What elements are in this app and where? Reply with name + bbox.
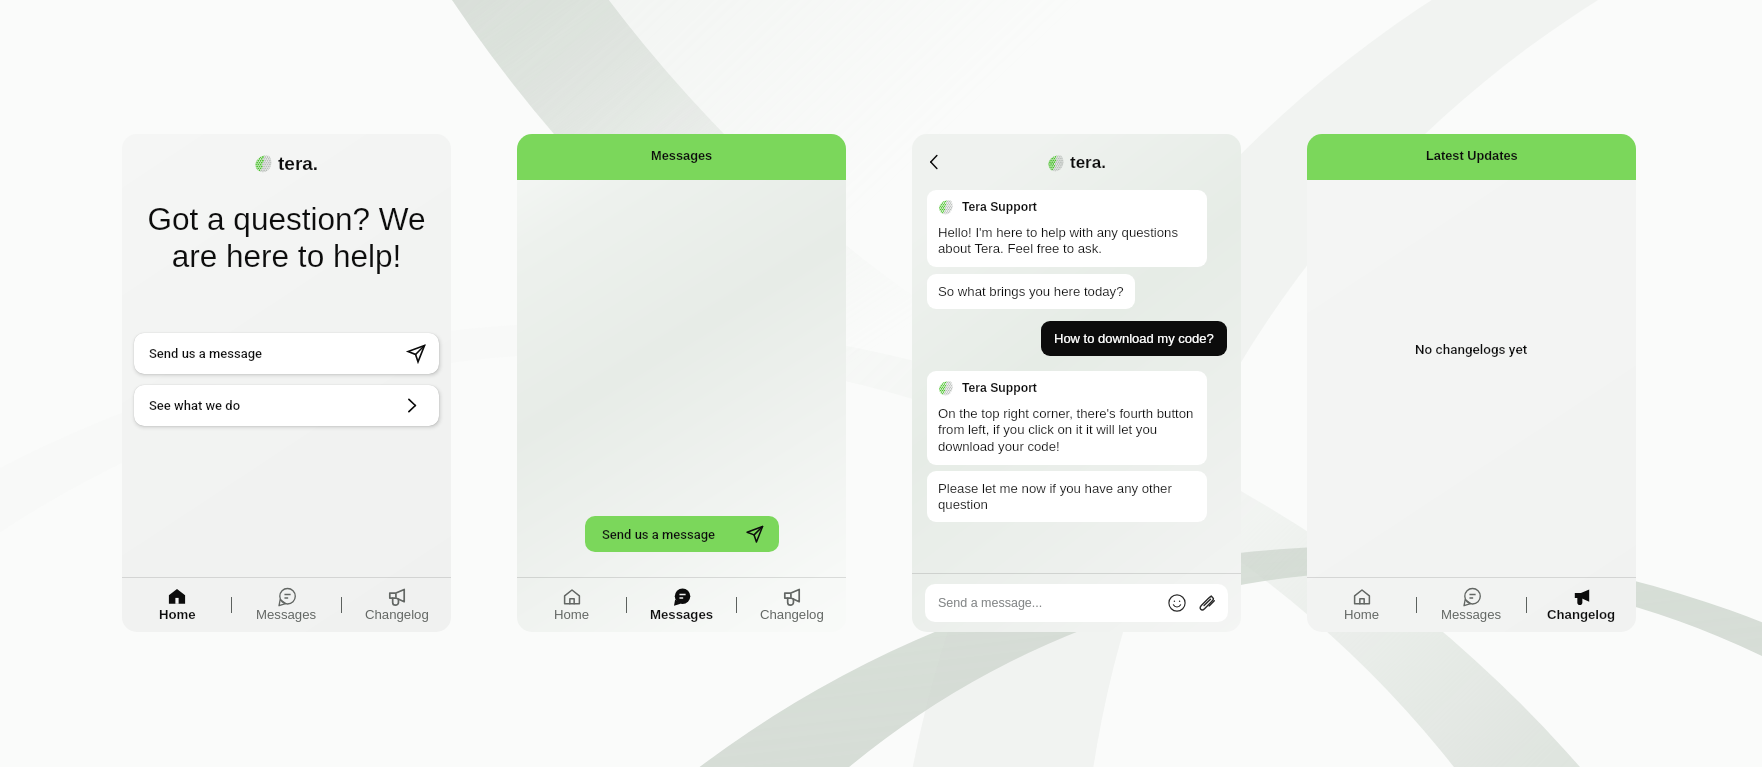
staticText: Messages [256,607,317,622]
staticText: See what we do [149,398,241,413]
staticText: Messages [1441,607,1502,622]
button[interactable]: Back [922,150,946,174]
staticText: On the top right corner, there's fourth … [938,406,1197,454]
button[interactable]: Changelog [737,578,846,632]
staticText: Please let me now if you have any other … [938,481,1196,512]
staticText: Tera Support [962,200,1037,214]
staticText: Messages [650,607,714,622]
button[interactable]: Changelog [342,578,451,632]
staticText: No changelogs yet [1415,341,1528,357]
staticText: Home [159,607,196,622]
button[interactable]: Please let me now if you have any other … [927,471,1207,522]
staticText: How to download my code? [1054,331,1214,346]
button[interactable]: Home [123,578,231,632]
button[interactable]: How to download my code? [1041,321,1227,356]
staticText: Latest Updates [1426,148,1518,162]
button[interactable]: Messages [627,578,736,632]
button[interactable]: Send us a message [585,516,779,552]
button[interactable]: Send us a message [134,333,439,374]
staticText: Send us a message [602,527,716,542]
button[interactable]: Tera Support [927,190,1207,267]
button[interactable]: Home [1308,578,1416,632]
staticText: Send a message... [938,596,1043,610]
button[interactable]: See what we do [134,385,439,426]
staticText: Send us a message [149,346,263,361]
staticText: Home [1344,607,1380,622]
button[interactable]: Messages [1417,578,1526,632]
button[interactable]: Messages [232,578,341,632]
button[interactable]: So what brings you here today? [927,274,1135,309]
staticText: So what brings you here today? [938,284,1124,299]
staticText: Changelog [760,607,824,622]
staticText: Home [554,607,590,622]
button[interactable]: Emoji [1168,594,1186,612]
staticText: Messages [651,148,713,162]
button[interactable]: Send a message... [925,584,1228,622]
button[interactable]: Home [518,578,626,632]
button[interactable]: Changelog [1527,578,1636,632]
staticText: Hello! I'm here to help with any questio… [938,225,1197,256]
staticText: Changelog [365,607,429,622]
staticText: Tera Support [962,381,1037,395]
staticText: tera. [1070,153,1106,172]
staticText: Changelog [1547,607,1616,622]
staticText: Got a question? We are here to help! [134,201,439,274]
button[interactable]: Tera Support [927,371,1207,465]
staticText: tera. [278,153,319,174]
button[interactable]: Attach file [1198,594,1216,612]
